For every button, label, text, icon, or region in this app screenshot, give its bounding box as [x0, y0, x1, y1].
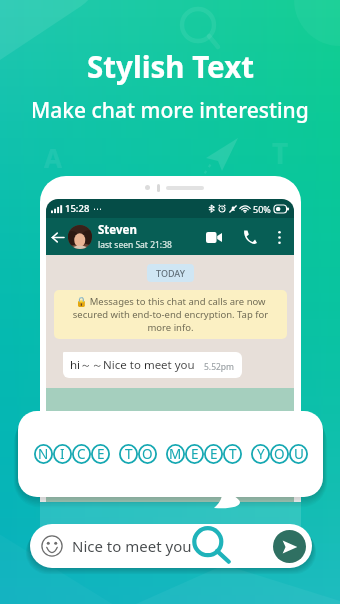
staticText: E [97, 445, 105, 463]
staticText: E [210, 445, 218, 463]
staticText: 50% [253, 203, 271, 215]
staticText: Y [257, 445, 265, 463]
staticText: T [272, 134, 289, 172]
staticText: M [169, 445, 182, 463]
staticText: Stylish Text [87, 46, 254, 86]
staticText: 5.52pm [204, 361, 235, 373]
button[interactable]: Video call [202, 225, 226, 249]
staticText: 15:28 [65, 202, 90, 215]
button[interactable]: Nice to meet you [30, 524, 312, 568]
staticText: TODAY [156, 267, 185, 279]
staticText: O [142, 445, 153, 463]
button[interactable]: Back [47, 227, 67, 247]
staticText: U [294, 445, 304, 463]
staticText: T [229, 445, 237, 463]
staticText: hi～～Nice to meet you [70, 357, 195, 373]
button[interactable]: Voice call [238, 225, 262, 249]
staticText: 🔒 Messages to this chat and calls are no… [64, 295, 277, 334]
staticText: ⋯ [93, 204, 102, 214]
staticText: Nice to meet you [72, 536, 192, 556]
staticText: C [77, 445, 86, 463]
button[interactable]: More options [269, 227, 289, 247]
staticText: Make chat more interesting [31, 96, 309, 125]
staticText: N [38, 445, 49, 463]
staticText: A [44, 140, 62, 175]
button[interactable]: Send [273, 530, 306, 563]
staticText: T [125, 445, 133, 463]
staticText: E [191, 445, 199, 463]
staticText: Steven [98, 222, 137, 238]
staticText: I [60, 445, 65, 463]
staticText: O [274, 445, 285, 463]
staticText: last seen Sat 21:38 [98, 239, 172, 251]
